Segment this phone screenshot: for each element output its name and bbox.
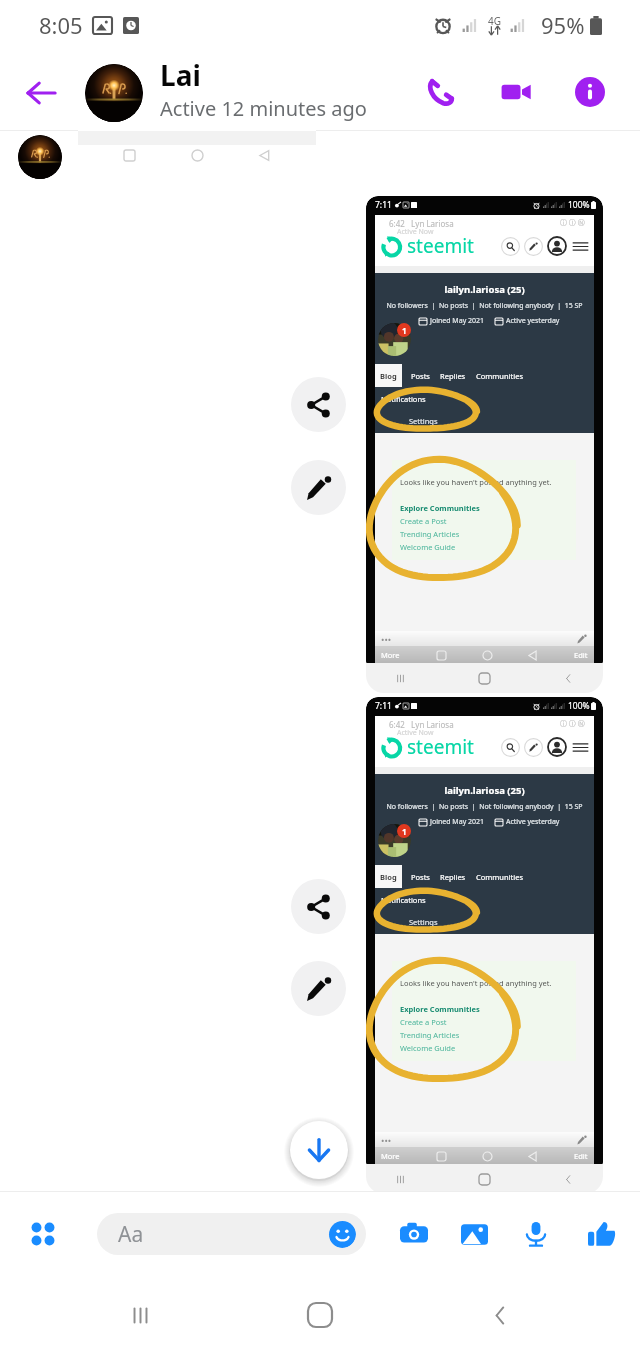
staticText: 6:42 Lyn Lariosa [389, 719, 454, 730]
staticText: 1 [402, 325, 407, 336]
button[interactable]: Welcome Guide [400, 542, 456, 552]
staticText: ••• [381, 1134, 392, 1146]
staticText: Settings [409, 416, 438, 426]
button[interactable]: Communities [471, 364, 528, 387]
button[interactable]: Photo [78, 126, 316, 171]
staticText: Notifications [381, 895, 426, 905]
staticText: Joined May 2021 [430, 316, 485, 326]
button[interactable]: Posts [402, 865, 435, 888]
staticText: Active Now [397, 728, 434, 738]
button[interactable]: Edit [291, 961, 346, 1016]
button[interactable]: Aa [97, 1213, 366, 1255]
button[interactable]: Edit [291, 460, 346, 515]
staticText: More [381, 650, 400, 660]
staticText: Replies [440, 371, 466, 381]
button[interactable]: Posts [402, 364, 435, 387]
staticText: Communities [476, 371, 523, 381]
staticText: lailyn.lariosa (25) [375, 784, 594, 797]
staticText: Active yesterday [506, 316, 560, 326]
button[interactable]: Share [291, 879, 346, 934]
button[interactable]: Camera [390, 1210, 438, 1258]
button[interactable]: Replies [435, 364, 471, 387]
button[interactable]: Search [501, 237, 520, 256]
button[interactable]: Photo [366, 697, 603, 1194]
button[interactable]: Share [291, 377, 346, 432]
button[interactable]: Back [470, 1282, 530, 1348]
staticText: ⓘ Ⓘ Ⓝ [560, 719, 585, 729]
staticText: Active 12 minutes ago [160, 95, 367, 122]
staticText: Notifications [381, 394, 426, 404]
button[interactable]: Recent apps [110, 1282, 170, 1348]
staticText: Communities [476, 872, 523, 882]
button[interactable]: Home [290, 1282, 350, 1348]
staticText: Aa [118, 1220, 144, 1249]
staticText: 6:42 Lyn Lariosa [389, 218, 454, 229]
staticText: 7:11 [375, 700, 392, 712]
staticText: Lai [160, 56, 201, 94]
button[interactable]: Blog [375, 364, 402, 387]
staticText: 100% [568, 700, 590, 712]
staticText: 4G [488, 14, 501, 28]
staticText: No followers | No posts | Not following … [375, 802, 594, 812]
staticText: lailyn.lariosa (25) [375, 283, 594, 296]
button[interactable]: Explore Communities [400, 503, 480, 513]
staticText: 7:11 [375, 199, 392, 211]
staticText: Blog [380, 872, 397, 882]
staticText: More [381, 1151, 400, 1161]
staticText: Active yesterday [506, 817, 560, 827]
staticText: Posts [411, 371, 430, 381]
staticText: 95% [541, 10, 585, 40]
button[interactable]: Send like [577, 1210, 625, 1258]
staticText: Looks like you haven't posted anything y… [400, 978, 552, 988]
button[interactable]: Conversation information [567, 69, 613, 115]
button[interactable]: Write post [524, 237, 543, 256]
button[interactable]: Create a Post [400, 1017, 447, 1027]
staticText: 100% [568, 199, 590, 211]
staticText: Settings [409, 917, 438, 927]
staticText: steemit [407, 233, 474, 259]
staticText: 8:05 [39, 10, 83, 40]
button[interactable]: Open gallery [450, 1210, 498, 1258]
button[interactable]: Explore Communities [400, 1004, 480, 1014]
button[interactable]: Choose emoji [328, 1220, 356, 1248]
button[interactable]: Trending Articles [400, 1030, 460, 1040]
button[interactable]: Voice call [417, 69, 463, 115]
button[interactable]: Search [501, 738, 520, 757]
staticText: ••• [381, 633, 392, 645]
button[interactable]: Open actions [19, 1210, 67, 1258]
staticText: Looks like you haven't posted anything y… [400, 477, 552, 487]
button[interactable]: Blog [375, 865, 402, 888]
button[interactable]: Replies [435, 865, 471, 888]
staticText: 1 [402, 826, 407, 837]
button[interactable]: Communities [471, 865, 528, 888]
button[interactable]: Record voice message [512, 1210, 560, 1258]
staticText: Replies [440, 872, 466, 882]
staticText: ⓘ Ⓘ Ⓝ [560, 218, 585, 228]
button[interactable]: Photo [366, 196, 603, 693]
staticText: Joined May 2021 [430, 817, 485, 827]
button[interactable]: Back [18, 70, 64, 116]
staticText: Edit [574, 1151, 588, 1161]
staticText: No followers | No posts | Not following … [375, 301, 594, 311]
button[interactable]: Create a Post [400, 516, 447, 526]
staticText: steemit [407, 734, 474, 760]
button[interactable]: Trending Articles [400, 529, 460, 539]
button[interactable]: Welcome Guide [400, 1043, 456, 1053]
staticText: Posts [411, 872, 430, 882]
button[interactable]: Video call [493, 69, 539, 115]
staticText: Active Now [397, 227, 434, 237]
staticText: Blog [380, 371, 397, 381]
staticText: Edit [574, 650, 588, 660]
button[interactable]: Scroll to latest message [290, 1121, 348, 1179]
button[interactable]: Write post [524, 738, 543, 757]
